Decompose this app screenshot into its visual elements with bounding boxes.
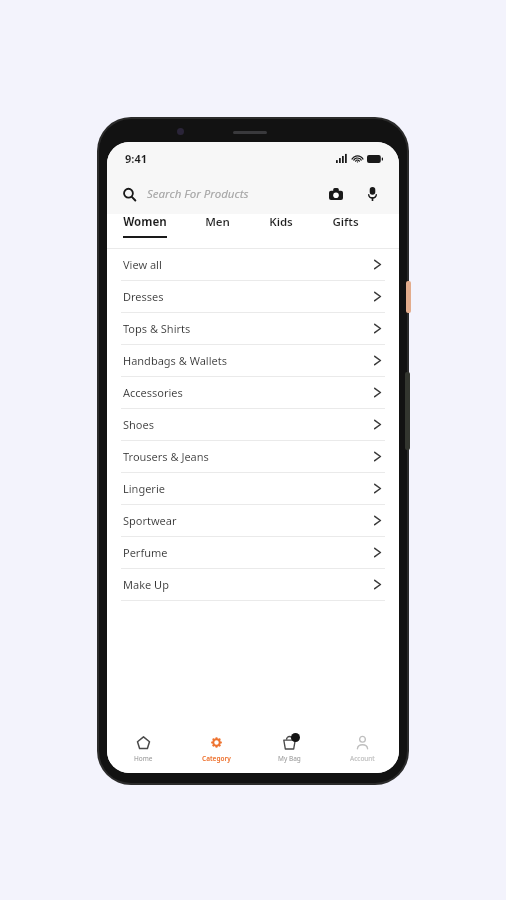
button[interactable]: Kids bbox=[249, 214, 313, 248]
staticText: Gifts bbox=[332, 214, 359, 230]
staticText: Make Up bbox=[123, 577, 374, 592]
staticText: Sportwear bbox=[123, 513, 374, 528]
staticText: Perfume bbox=[123, 545, 374, 560]
button[interactable]: Handbags & Wallets bbox=[107, 345, 399, 377]
button[interactable]: Lingerie bbox=[107, 473, 399, 505]
staticText: Home bbox=[134, 754, 153, 763]
button[interactable]: Tops & Shirts bbox=[107, 313, 399, 345]
button[interactable]: Trousers & Jeans bbox=[107, 441, 399, 473]
button[interactable]: Category bbox=[180, 725, 253, 773]
staticText: View all bbox=[123, 257, 374, 272]
staticText: Kids bbox=[269, 214, 293, 230]
staticText: Shoes bbox=[123, 417, 374, 432]
staticText: My Bag bbox=[278, 754, 301, 763]
staticText: Men bbox=[205, 214, 230, 230]
staticText: Lingerie bbox=[123, 481, 374, 496]
button[interactable]: Accessories bbox=[107, 377, 399, 409]
button[interactable]: Shoes bbox=[107, 409, 399, 441]
staticText: Category bbox=[202, 754, 231, 763]
button[interactable]: Search by camera bbox=[325, 183, 347, 205]
staticText: 9:41 bbox=[125, 151, 147, 166]
button[interactable]: Men bbox=[186, 214, 249, 248]
staticText: Dresses bbox=[123, 289, 374, 304]
button[interactable]: Women bbox=[123, 214, 186, 248]
staticText: Tops & Shirts bbox=[123, 321, 374, 336]
button[interactable]: View all bbox=[107, 249, 399, 281]
button[interactable]: Perfume bbox=[107, 537, 399, 569]
staticText: Women bbox=[123, 214, 167, 230]
button[interactable]: My Bag bbox=[253, 725, 326, 773]
button[interactable]: Voice search bbox=[361, 183, 383, 205]
button[interactable]: Search For Products bbox=[107, 174, 399, 214]
staticText: Handbags & Wallets bbox=[123, 353, 374, 368]
button[interactable]: Gifts bbox=[313, 214, 377, 248]
button[interactable]: Dresses bbox=[107, 281, 399, 313]
button[interactable]: Sportwear bbox=[107, 505, 399, 537]
staticText: Accessories bbox=[123, 385, 374, 400]
button[interactable]: Account bbox=[326, 725, 399, 773]
button[interactable]: Make Up bbox=[107, 569, 399, 601]
staticText: Search For Products bbox=[147, 186, 325, 202]
staticText: Trousers & Jeans bbox=[123, 449, 374, 464]
staticText: Account bbox=[350, 754, 375, 763]
button[interactable]: Home bbox=[107, 725, 180, 773]
